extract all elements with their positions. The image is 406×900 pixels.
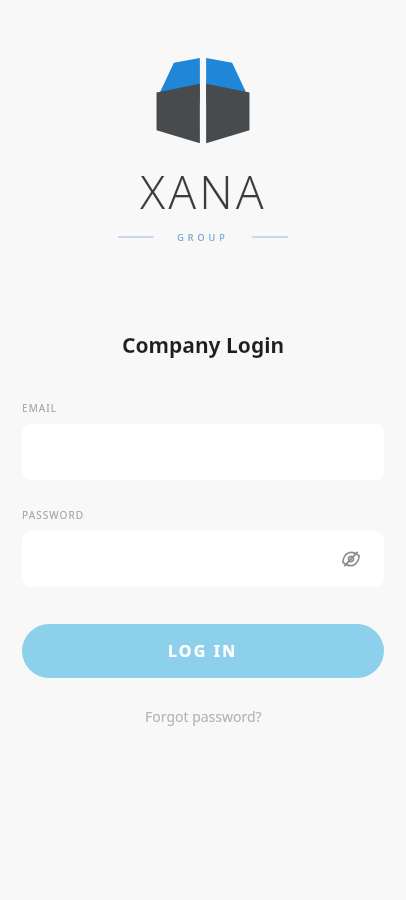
staticText: GROUP [177,231,229,243]
button[interactable]: Show password [336,544,366,574]
button[interactable]: LOG IN [22,624,384,678]
staticText: Company Login [122,331,285,360]
button[interactable]: Show password [22,531,384,587]
staticText: EMAIL [22,401,58,415]
staticText: LOG IN [168,640,238,662]
staticText: XANA [140,160,267,223]
staticText: Forgot password? [145,707,262,726]
button[interactable]: Forgot password? [131,700,276,733]
staticText: PASSWORD [22,508,85,522]
